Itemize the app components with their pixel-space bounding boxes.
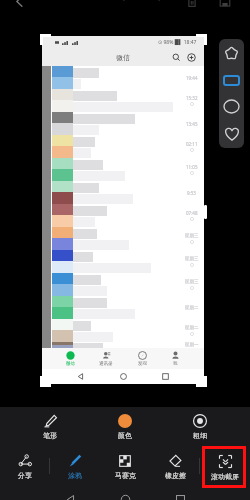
staticText: ⊙ 98% █▌ 18:47 bbox=[158, 39, 197, 46]
button[interactable]: 颜色 bbox=[87, 407, 162, 446]
button[interactable]: 11:05 bbox=[42, 158, 204, 181]
staticText: 笔形 bbox=[43, 431, 57, 440]
button[interactable]: Home bbox=[119, 493, 131, 500]
staticText: 星期三 bbox=[185, 279, 199, 285]
staticText: 星期二 bbox=[185, 325, 199, 331]
button[interactable]: 滚动截屏 bbox=[200, 454, 250, 481]
staticText: 微信 bbox=[116, 53, 130, 62]
button[interactable]: Ellipse shape bbox=[219, 94, 244, 119]
staticText: 15:32 bbox=[186, 95, 198, 101]
button[interactable]: 19:44 bbox=[42, 66, 204, 89]
button[interactable]: 13:45 bbox=[42, 112, 204, 135]
button[interactable]: Rectangle shape bbox=[219, 68, 244, 93]
staticText: 07:48 bbox=[186, 210, 198, 216]
staticText: 星期三 bbox=[185, 233, 199, 239]
staticText: 涂鸦 bbox=[68, 471, 82, 480]
button[interactable]: 微信 bbox=[66, 351, 75, 367]
button[interactable]: 笔形 bbox=[13, 407, 87, 446]
button[interactable]: Redo bbox=[148, 0, 162, 8]
button[interactable]: Save bbox=[218, 0, 232, 9]
button[interactable]: 马赛克 bbox=[100, 454, 150, 480]
staticText: 粗细 bbox=[193, 431, 207, 440]
button[interactable]: Heart shape bbox=[219, 121, 244, 146]
staticText: 分享 bbox=[18, 471, 32, 480]
staticText: 滚动截屏 bbox=[211, 472, 239, 481]
button[interactable]: Back bbox=[12, 0, 26, 8]
staticText: 星期三 bbox=[185, 256, 199, 262]
button[interactable]: 分享 bbox=[0, 454, 50, 480]
staticText: 星期二 bbox=[185, 305, 199, 311]
staticText: 橡皮擦 bbox=[165, 471, 186, 480]
button[interactable]: 02:11 bbox=[42, 135, 204, 158]
button[interactable]: 星期三 bbox=[42, 273, 204, 296]
button[interactable]: 15:32 bbox=[42, 89, 204, 112]
staticText: 11:05 bbox=[186, 164, 198, 170]
staticText: 13:45 bbox=[186, 121, 198, 127]
button[interactable]: 发现 bbox=[138, 351, 147, 367]
staticText: 19:44 bbox=[186, 75, 198, 81]
button[interactable]: 涂鸦 bbox=[50, 454, 100, 480]
button[interactable]: 星期二 bbox=[42, 296, 204, 319]
button[interactable]: 通讯录 bbox=[99, 351, 113, 367]
button[interactable]: Back bbox=[64, 493, 76, 500]
button[interactable]: 粗细 bbox=[162, 407, 237, 446]
button[interactable]: 9:53 bbox=[42, 181, 204, 204]
staticText: 微信 bbox=[66, 361, 75, 367]
button[interactable]: 星期一 bbox=[42, 342, 204, 348]
staticText: 马赛克 bbox=[115, 471, 136, 480]
button[interactable]: Delete bbox=[185, 0, 199, 9]
staticText: 通讯录 bbox=[99, 361, 113, 367]
button[interactable]: 07:48 bbox=[42, 204, 204, 227]
button[interactable]: 星期三 bbox=[42, 250, 204, 273]
button[interactable]: 我 bbox=[171, 351, 180, 367]
staticText: 02:11 bbox=[186, 141, 198, 147]
button[interactable]: Blob shape bbox=[219, 41, 244, 66]
staticText: 发现 bbox=[138, 361, 147, 367]
button[interactable]: 橡皮擦 bbox=[150, 454, 200, 480]
button[interactable]: 星期三 bbox=[42, 227, 204, 250]
staticText: 颜色 bbox=[118, 431, 132, 440]
staticText: 我 bbox=[173, 361, 178, 367]
button[interactable]: 星期二 bbox=[42, 319, 204, 342]
staticText: 星期一 bbox=[185, 342, 199, 348]
button[interactable]: Recents bbox=[174, 493, 186, 500]
staticText: 9:53 bbox=[187, 190, 196, 196]
button[interactable]: Undo bbox=[121, 0, 135, 8]
